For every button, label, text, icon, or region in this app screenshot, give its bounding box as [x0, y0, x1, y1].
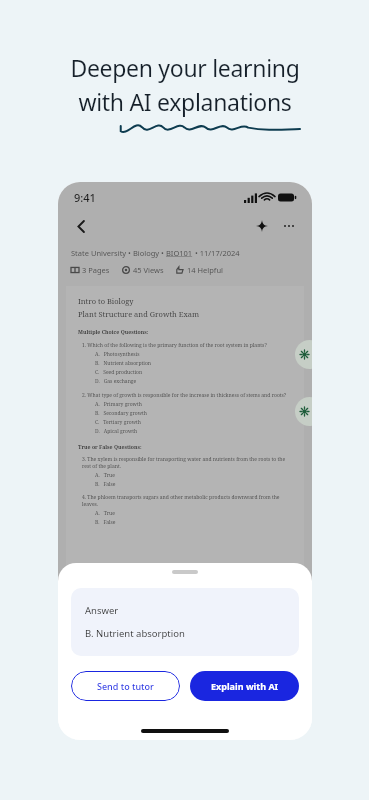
button[interactable]: Send to tutor: [71, 671, 180, 701]
button[interactable]: Explain with AI: [295, 397, 312, 426]
staticText: Answer: [85, 604, 119, 617]
staticText: B. Secondary growth: [95, 410, 147, 417]
staticText: 45 Views: [133, 265, 164, 275]
staticText: Intro to Biology: [78, 296, 134, 306]
staticText: D. Apical growth: [95, 428, 138, 435]
staticText: State University • Biology •: [71, 248, 166, 258]
staticText: 9:41: [74, 190, 96, 205]
button[interactable]: Explain with AI: [295, 340, 312, 369]
staticText: B. False: [95, 481, 116, 488]
staticText: C. Tertiary growth: [95, 419, 141, 426]
button[interactable]: 14 Helpful: [176, 265, 224, 275]
staticText: BIO101: [166, 248, 193, 258]
staticText: Plant Structure and Growth Exam: [78, 309, 200, 319]
staticText: D. Gas exchange: [95, 378, 137, 385]
button[interactable]: 45 Views: [122, 265, 164, 275]
button[interactable]: More options: [279, 216, 299, 236]
staticText: with AI explanations: [78, 86, 292, 117]
staticText: 14 Helpful: [187, 265, 224, 275]
staticText: B. Nutrient absorption: [85, 627, 185, 640]
staticText: Deepen your learning: [70, 52, 300, 83]
staticText: • 11/17/2024: [193, 248, 240, 258]
staticText: 2. What type of growth is responsible fo…: [82, 392, 287, 399]
staticText: 1. Which of the following is the primary…: [82, 342, 267, 349]
button[interactable]: AI assist: [252, 216, 272, 236]
staticText: B. Nutrient absorption: [95, 360, 152, 367]
staticText: C. Seed production: [95, 369, 143, 376]
staticText: 3. The xylem is responsible for transpor…: [82, 456, 292, 470]
staticText: Multiple Choice Questions:: [78, 328, 149, 335]
staticText: 3 Pages: [82, 265, 110, 275]
button[interactable]: Explain with AI: [190, 671, 299, 701]
button[interactable]: Back: [71, 216, 91, 236]
staticText: 4. The phloem transports sugars and othe…: [82, 494, 292, 508]
staticText: A. Primary growth: [95, 401, 142, 408]
button[interactable]: 3 Pages: [71, 265, 110, 275]
staticText: B. False: [95, 519, 116, 526]
staticText: Send to tutor: [97, 680, 154, 692]
staticText: A. True: [95, 472, 115, 479]
staticText: Explain with AI: [211, 680, 279, 692]
button[interactable]: Answer: [71, 588, 299, 656]
staticText: True or False Questions:: [78, 443, 142, 450]
staticText: A. True: [95, 510, 115, 517]
staticText: A. Photosynthesis: [95, 351, 140, 358]
